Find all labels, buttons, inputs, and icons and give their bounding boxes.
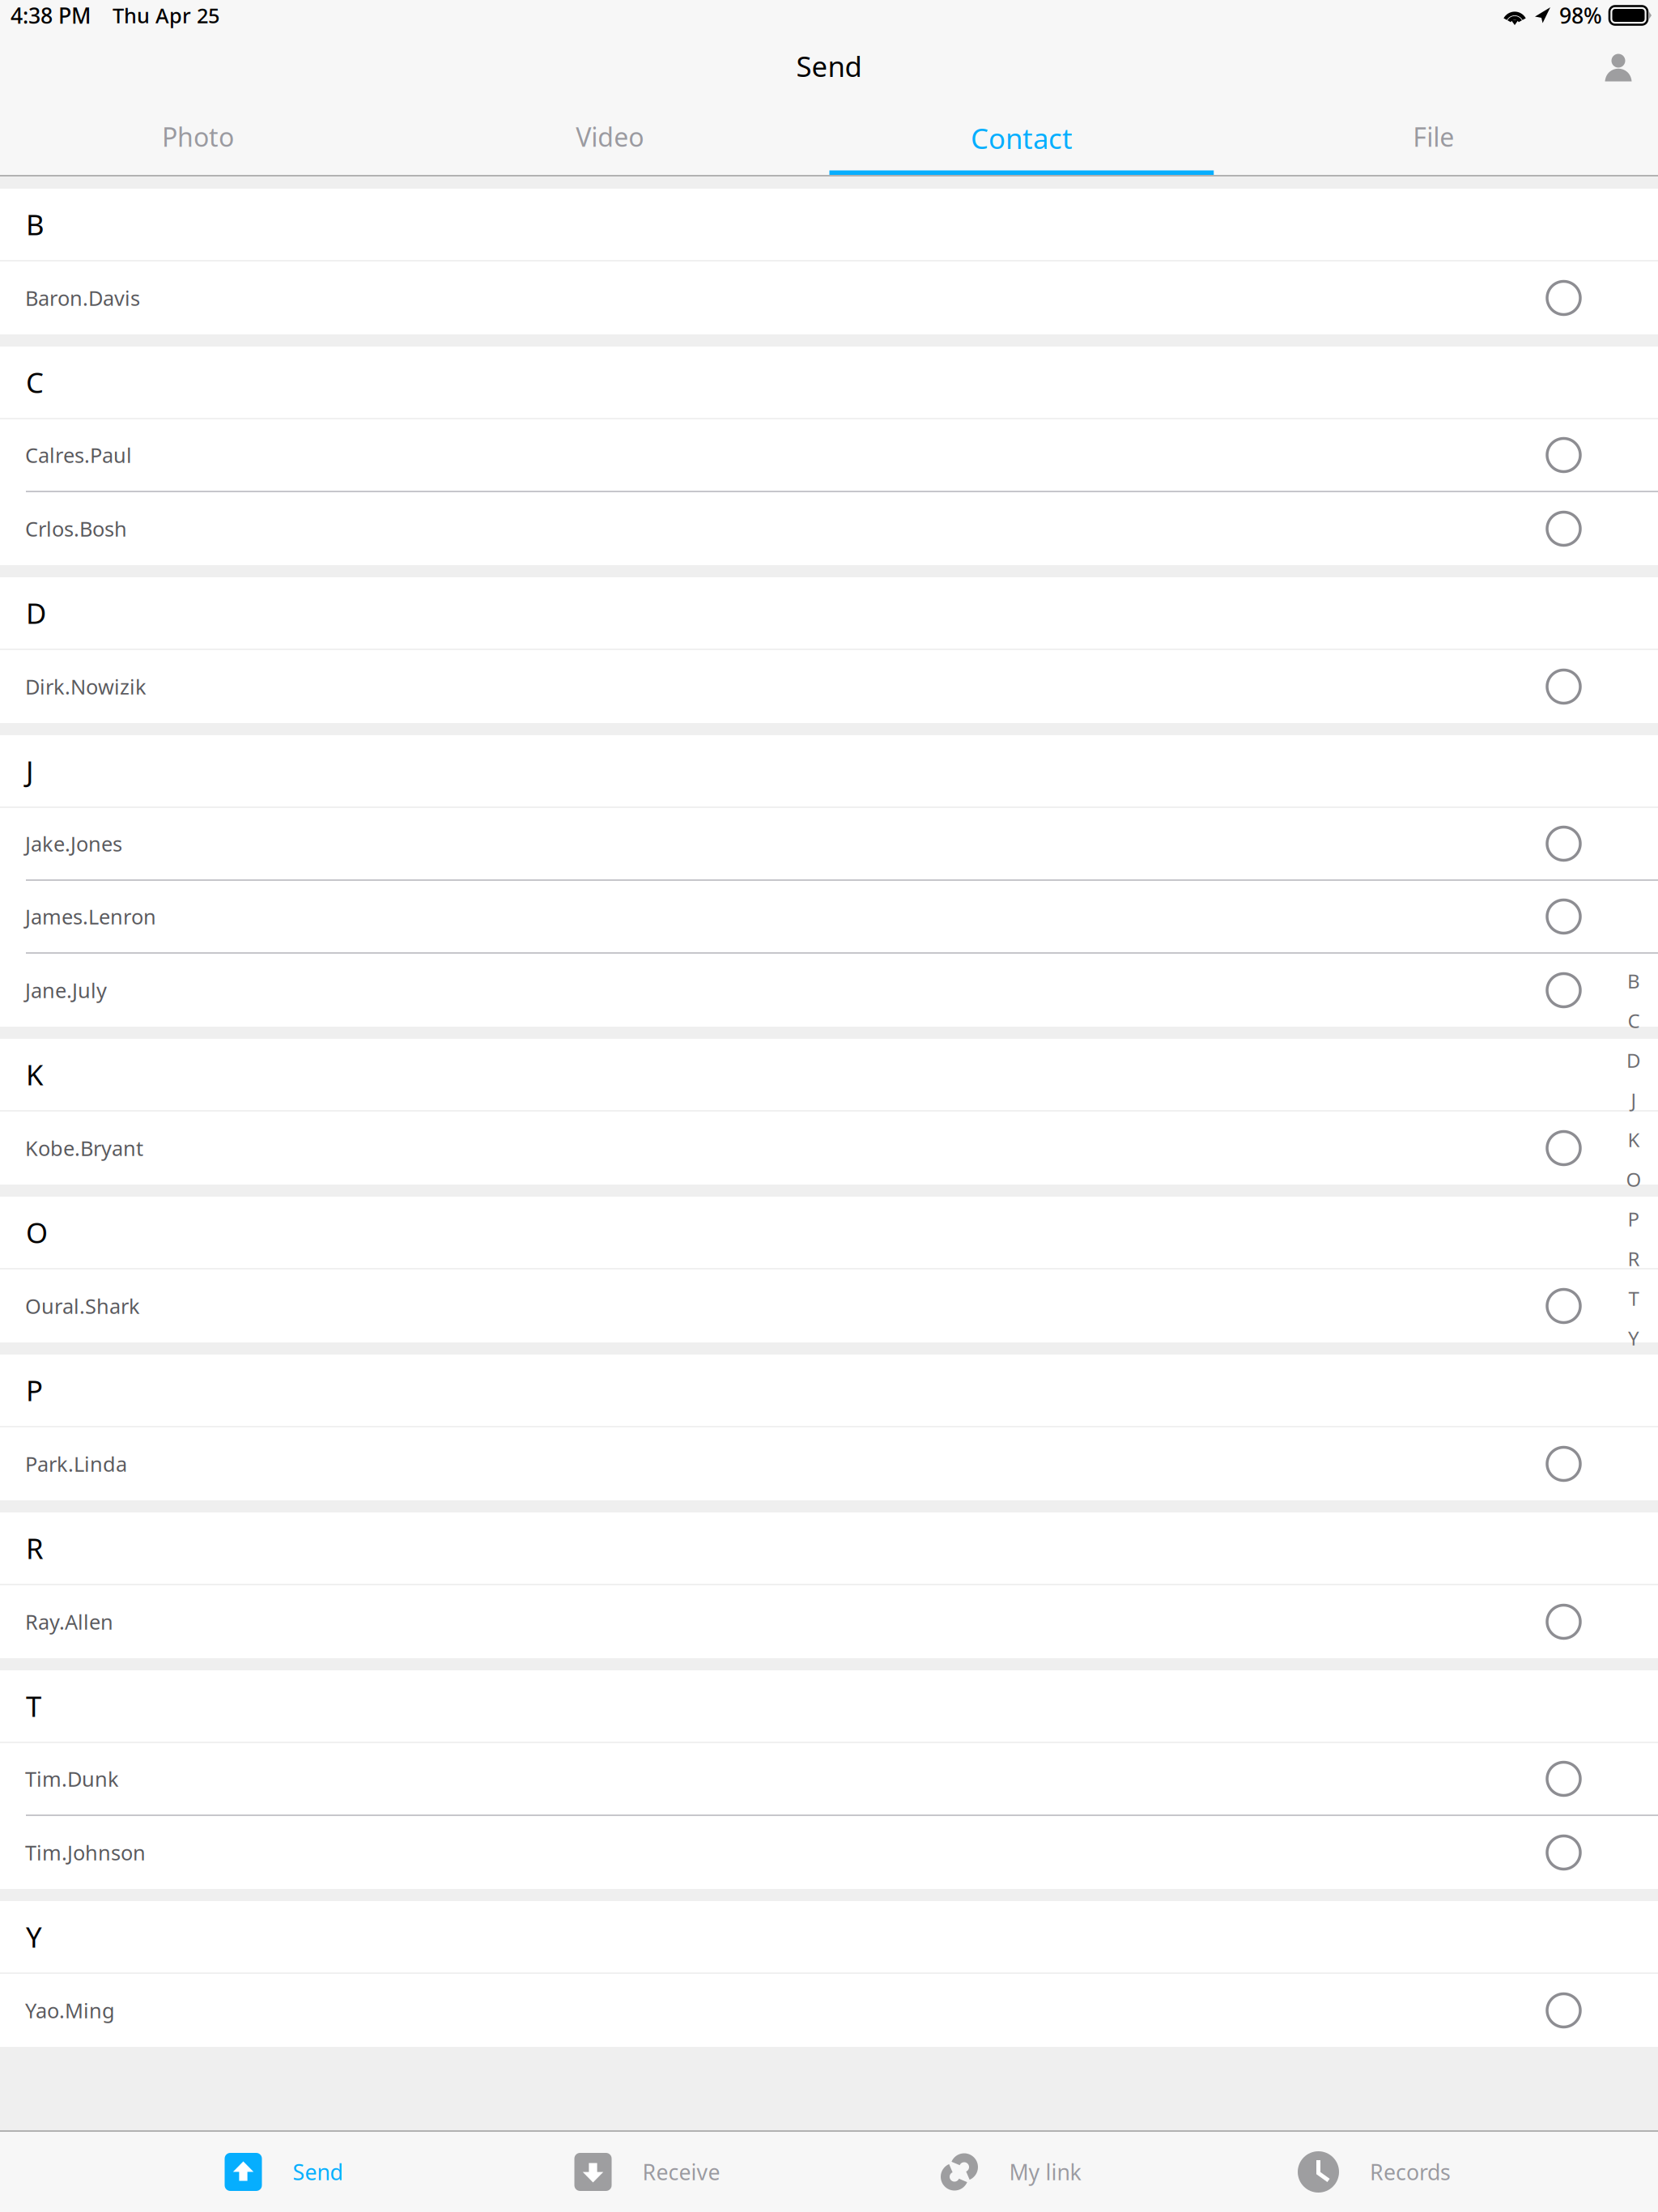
button[interactable]: Yao.Ming [0, 1974, 1658, 2047]
staticText: O [1626, 1166, 1641, 1192]
button[interactable]: Oural.Shark [0, 1270, 1658, 1342]
staticText: O [26, 1214, 48, 1251]
staticText: Calres.Paul [25, 441, 132, 469]
staticText: Yao.Ming [25, 1997, 115, 2024]
button[interactable]: Crlos.Bosh [0, 492, 1658, 565]
staticText: Oural.Shark [25, 1292, 140, 1320]
staticText: Video [576, 119, 644, 154]
staticText: Kobe.Bryant [25, 1135, 143, 1162]
staticText: 4:38 PM [11, 1, 91, 30]
staticText: P [1628, 1206, 1640, 1232]
staticText: R [1628, 1246, 1640, 1272]
button[interactable]: Ray.Allen [0, 1585, 1658, 1658]
staticText: J [26, 752, 33, 789]
button[interactable]: Baron.Davis [0, 262, 1658, 334]
button[interactable]: Send [102, 2131, 466, 2212]
staticText: R [26, 1529, 44, 1567]
button[interactable]: Jane.July [0, 954, 1658, 1027]
staticText: C [26, 364, 44, 401]
button[interactable]: Kobe.Bryant [0, 1112, 1658, 1185]
staticText: Tim.Johnson [25, 1839, 146, 1866]
staticText: B [1627, 968, 1640, 994]
button[interactable]: Receive [466, 2131, 829, 2212]
staticText: Y [26, 1918, 42, 1955]
staticText: File [1413, 119, 1454, 154]
staticText: Thu Apr 25 [113, 2, 219, 29]
staticText: 98% [1559, 1, 1602, 30]
button[interactable]: Photo [0, 101, 404, 175]
staticText: B [26, 206, 45, 243]
staticText: T [26, 1687, 41, 1725]
staticText: K [1628, 1127, 1640, 1153]
staticText: Send [796, 47, 862, 85]
button[interactable]: James.Lenron [0, 881, 1658, 954]
staticText: Dirk.Nowizik [25, 673, 147, 700]
staticText: Crlos.Bosh [25, 515, 127, 542]
button[interactable]: Dirk.Nowizik [0, 650, 1658, 723]
staticText: James.Lenron [25, 903, 156, 930]
button[interactable]: Contact [816, 101, 1228, 175]
staticText: Contact [971, 119, 1073, 157]
staticText: Records [1370, 2158, 1451, 2186]
staticText: T [1628, 1285, 1639, 1311]
staticText: K [26, 1056, 43, 1093]
button[interactable]: File [1227, 101, 1639, 175]
button[interactable]: Records [1192, 2131, 1556, 2212]
staticText: Ray.Allen [25, 1608, 113, 1635]
staticText: Photo [162, 119, 234, 154]
staticText: C [1628, 1008, 1640, 1034]
staticText: Jane.July [25, 977, 107, 1004]
button[interactable]: Video [404, 101, 816, 175]
button[interactable]: Tim.Johnson [0, 1816, 1658, 1889]
staticText: Park.Linda [25, 1450, 127, 1477]
button[interactable]: Calres.Paul [0, 419, 1658, 492]
staticText: Y [1628, 1325, 1639, 1351]
staticText: P [26, 1372, 43, 1409]
staticText: Send [293, 2158, 343, 2186]
staticText: J [1631, 1087, 1637, 1113]
staticText: Jake.Jones [25, 830, 122, 857]
staticText: D [26, 594, 46, 632]
staticText: My link [1009, 2158, 1081, 2186]
staticText: Receive [642, 2158, 720, 2186]
button[interactable]: Account [1574, 31, 1658, 101]
staticText: Baron.Davis [25, 284, 140, 312]
staticText: Tim.Dunk [25, 1765, 119, 1792]
button[interactable]: My link [829, 2131, 1192, 2212]
button[interactable]: Jake.Jones [0, 808, 1658, 881]
staticText: D [1626, 1047, 1641, 1073]
button[interactable]: Park.Linda [0, 1427, 1658, 1500]
button[interactable]: Tim.Dunk [0, 1743, 1658, 1816]
